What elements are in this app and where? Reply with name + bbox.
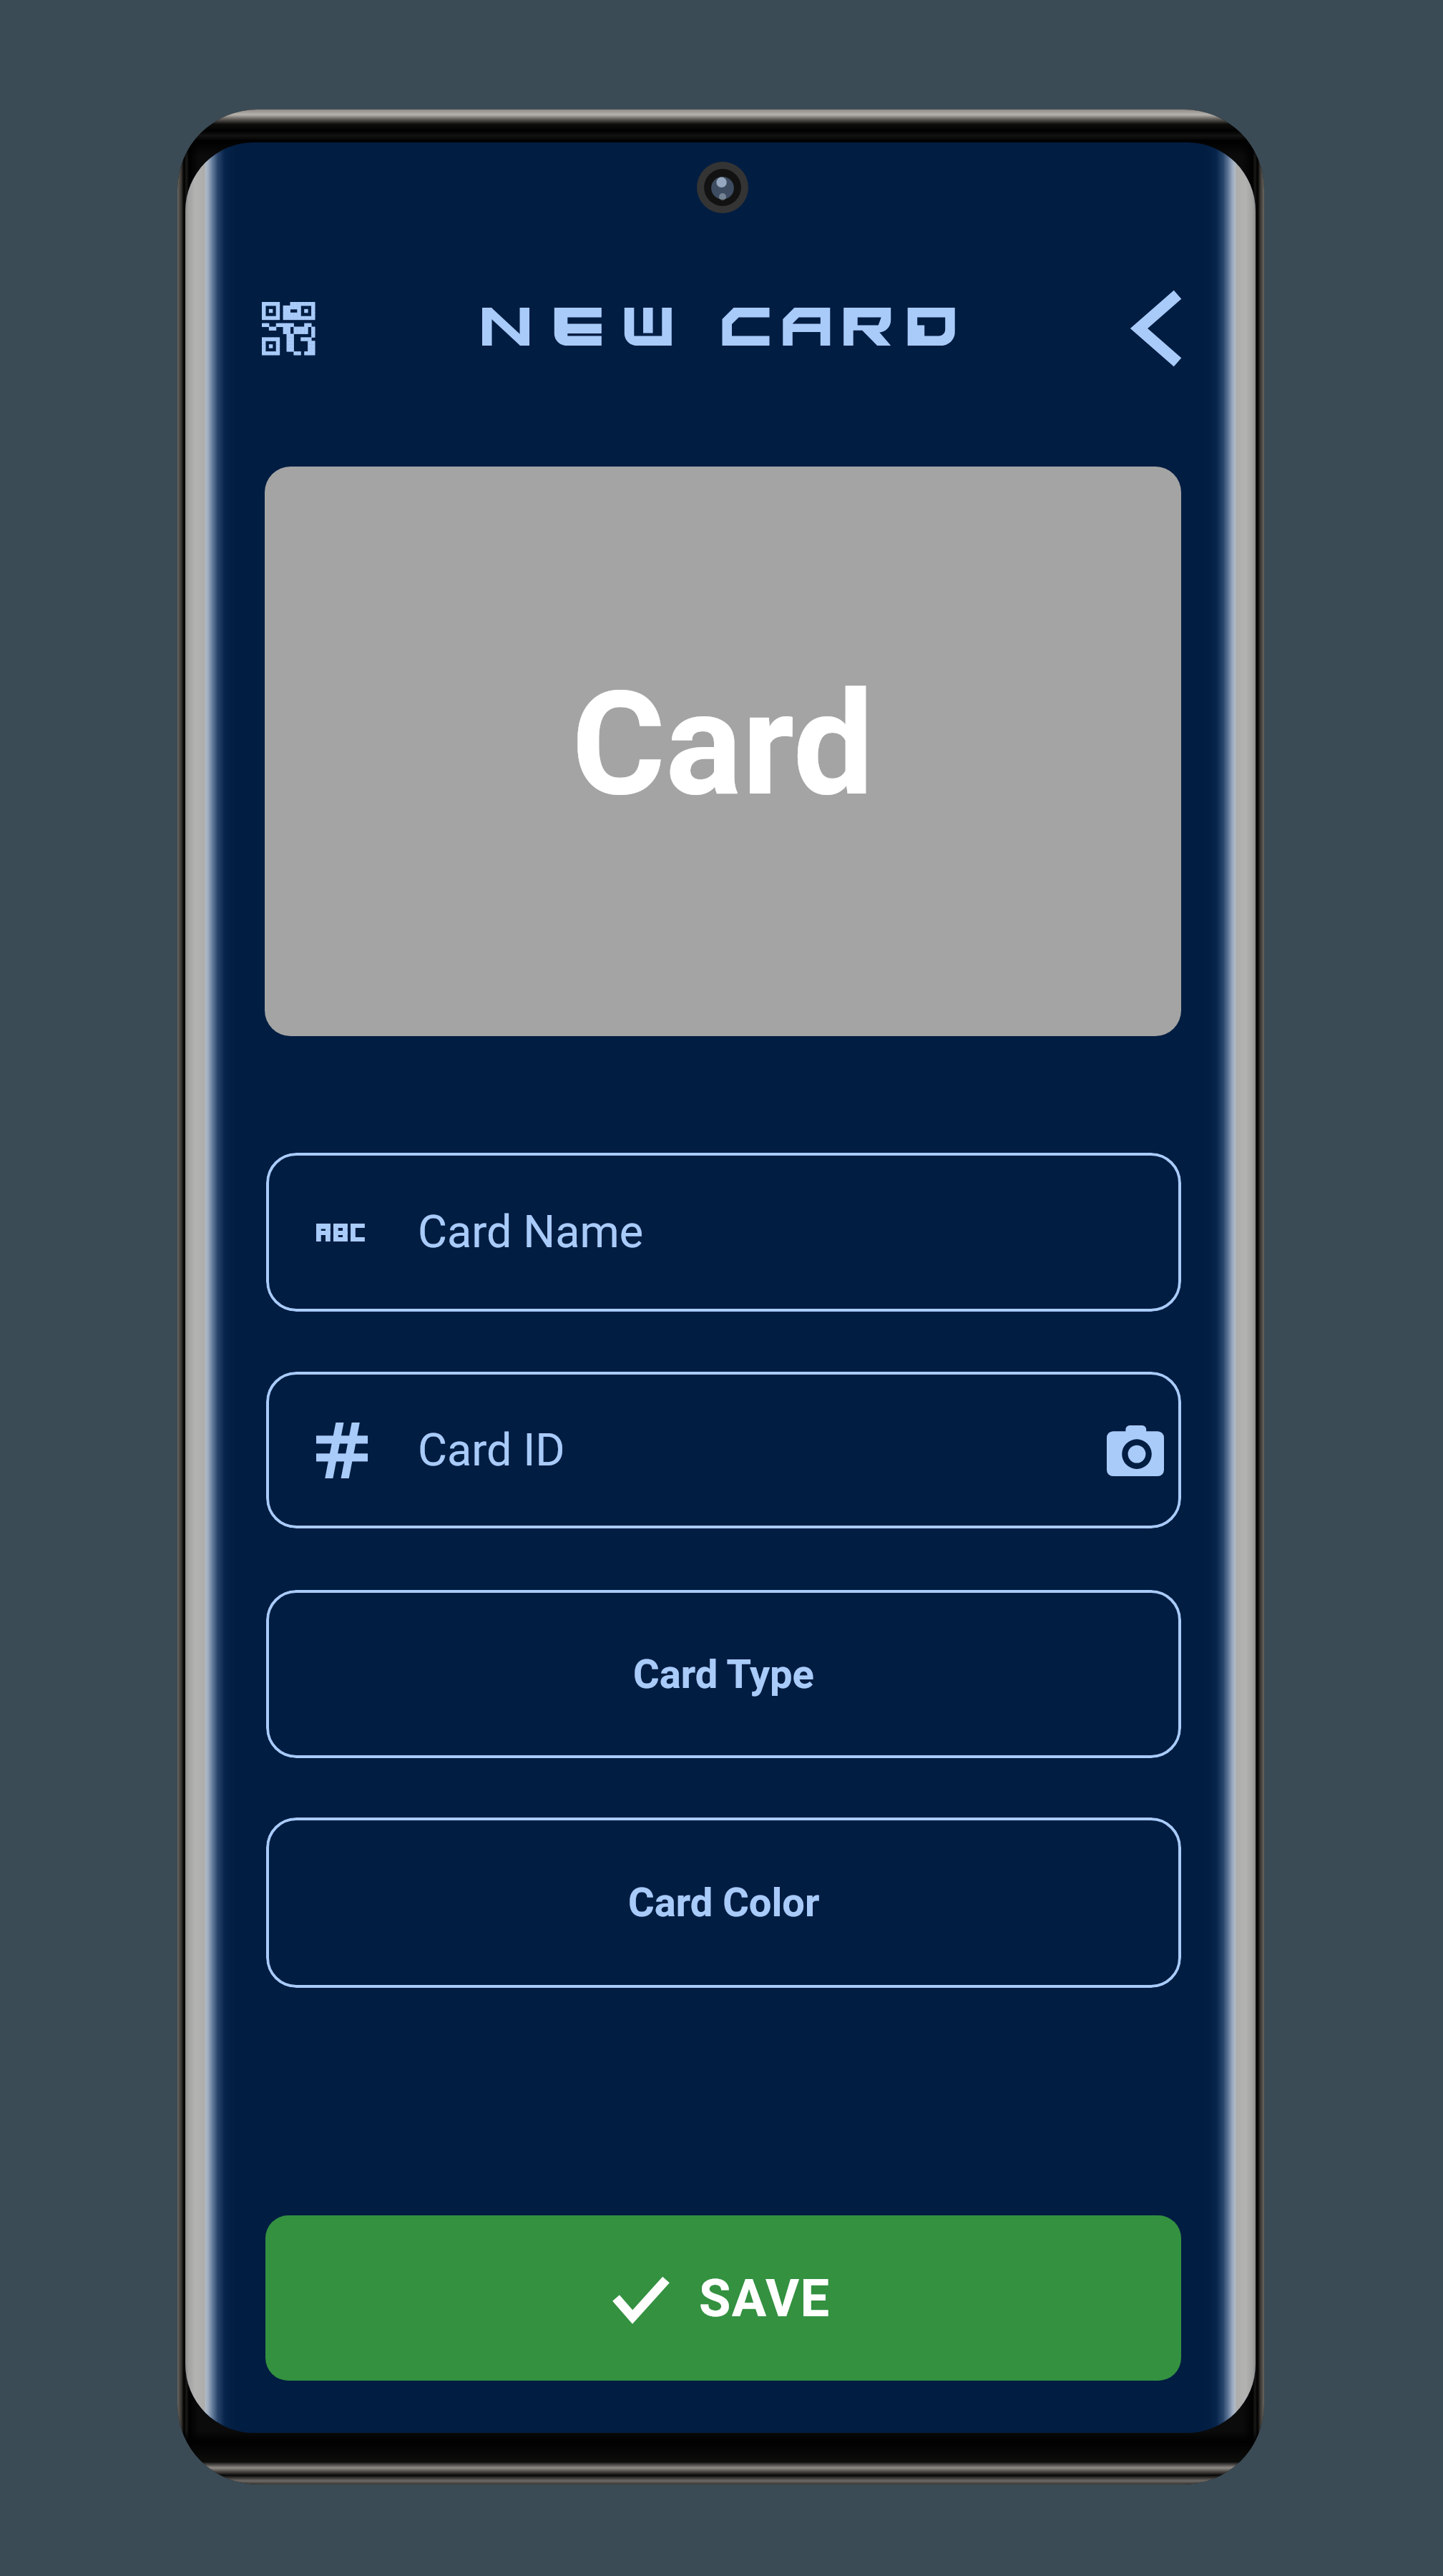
button[interactable]: Card ID	[266, 1372, 1181, 1528]
button[interactable]: Scan card with camera	[1101, 1416, 1170, 1485]
button[interactable]: Card	[265, 467, 1181, 1036]
button[interactable]: Card Type	[266, 1590, 1181, 1758]
staticText: Card ID	[418, 1424, 1101, 1477]
button[interactable]: Card Color	[266, 1818, 1181, 1988]
staticText: Card	[572, 660, 874, 828]
button[interactable]: Scan QR code	[238, 278, 338, 378]
staticText: Card Name	[418, 1206, 644, 1259]
button[interactable]: Back	[1106, 278, 1205, 378]
staticText: Card Type	[633, 1651, 814, 1698]
button[interactable]: SAVE	[265, 2215, 1181, 2381]
button[interactable]: Card Name	[266, 1153, 1181, 1312]
staticText: Card Color	[628, 1879, 820, 1926]
staticText: SAVE	[699, 2268, 831, 2328]
